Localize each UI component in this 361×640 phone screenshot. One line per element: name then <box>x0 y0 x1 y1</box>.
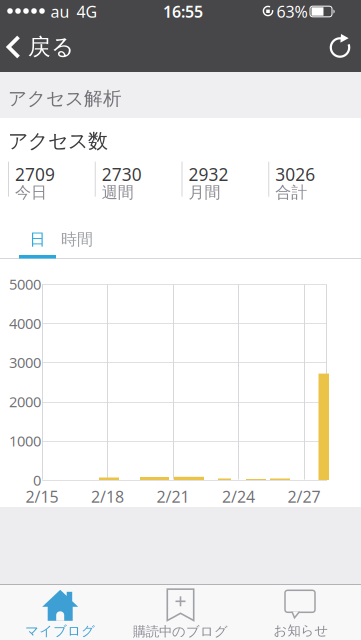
staticText: マイブログ <box>25 623 95 639</box>
staticText: 週間 <box>102 183 134 202</box>
staticText: au <box>50 1 69 22</box>
staticText: 4G <box>76 1 97 22</box>
staticText: 0 <box>33 470 41 490</box>
button[interactable]: お知らせ <box>241 587 361 640</box>
staticText: 2730 <box>102 163 142 186</box>
staticText: 63% <box>276 1 307 22</box>
staticText: 2/15 <box>25 486 58 507</box>
staticText: 合計 <box>275 183 307 202</box>
staticText: 2932 <box>188 163 228 186</box>
staticText: 時間 <box>61 230 93 249</box>
staticText: 2/24 <box>222 486 255 507</box>
staticText: 2/27 <box>287 486 320 507</box>
staticText: 2000 <box>9 392 41 411</box>
staticText: 16:55 <box>163 1 203 22</box>
staticText: 4000 <box>9 313 41 333</box>
staticText: 3000 <box>9 353 41 372</box>
staticText: 月間 <box>188 183 220 202</box>
staticText: 3026 <box>275 163 315 186</box>
button[interactable]: 時間 <box>57 226 97 252</box>
button[interactable]: マイブログ <box>0 587 120 640</box>
staticText: 5000 <box>9 274 41 294</box>
button[interactable]: 更新 <box>326 33 354 61</box>
staticText: アクセス数 <box>8 129 108 153</box>
staticText: 今日 <box>15 183 47 202</box>
staticText: 購読中のブログ <box>133 623 228 640</box>
staticText: 戻る <box>28 33 74 61</box>
staticText: 日 <box>29 230 45 249</box>
staticText: アクセス解析 <box>8 87 122 110</box>
button[interactable]: 戻る <box>0 22 74 72</box>
staticText: お知らせ <box>273 622 328 639</box>
button[interactable]: 日 <box>19 224 56 258</box>
staticText: 2/18 <box>91 486 124 507</box>
staticText: 2709 <box>15 163 55 186</box>
staticText: 1000 <box>9 431 41 451</box>
staticText: 2/21 <box>156 486 189 507</box>
button[interactable]: 購読中のブログ <box>120 586 240 640</box>
